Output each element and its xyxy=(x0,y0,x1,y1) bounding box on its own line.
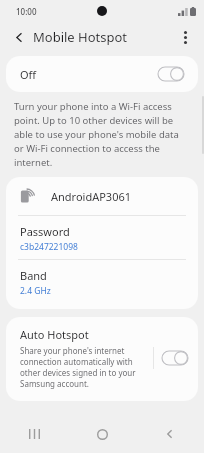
button[interactable]: Back xyxy=(136,415,204,453)
staticText: Turn your phone into a Wi-Fi access poin… xyxy=(14,100,188,169)
staticText: 10:00 xyxy=(16,6,37,17)
button[interactable]: Password xyxy=(6,216,198,259)
staticText: Band xyxy=(20,268,47,283)
staticText: Auto Hotspot xyxy=(20,327,89,342)
button[interactable]: Band xyxy=(6,260,198,303)
button[interactable]: More options xyxy=(172,24,198,50)
staticText: Mobile Hotspot xyxy=(33,28,128,46)
button[interactable]: Home xyxy=(68,415,136,453)
button[interactable]: AndroidAP3061 xyxy=(6,177,198,215)
staticText: Off xyxy=(20,67,37,82)
staticText: 2.4 GHz xyxy=(20,285,51,297)
button[interactable]: Back xyxy=(6,24,32,50)
staticText: Share your phone's internet connection a… xyxy=(20,345,147,389)
staticText: AndroidAP3061 xyxy=(51,189,132,204)
staticText: Password xyxy=(20,224,70,239)
button[interactable]: Off xyxy=(6,56,198,92)
staticText: c3b247221098 xyxy=(20,241,78,253)
button[interactable]: Recents xyxy=(0,415,68,453)
button[interactable]: Auto Hotspot xyxy=(6,317,198,401)
